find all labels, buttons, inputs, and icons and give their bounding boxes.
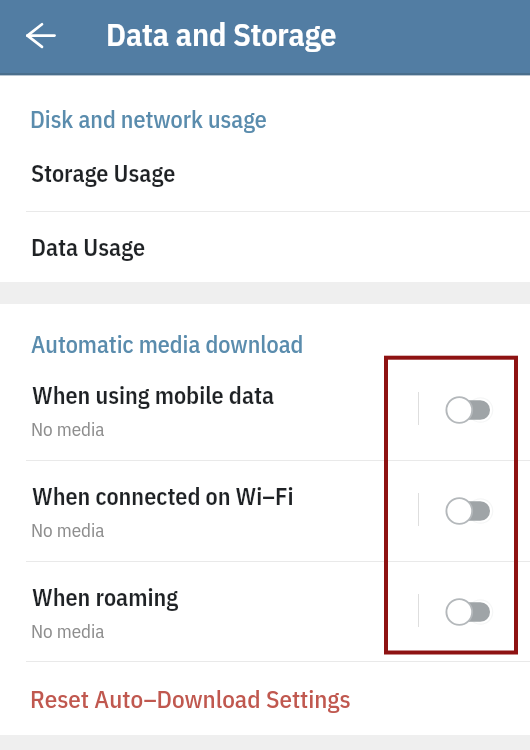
button[interactable] — [0, 212, 530, 281]
button[interactable] — [0, 140, 530, 210]
staticText: When roaming — [32, 581, 179, 612]
staticText: Data Usage — [31, 231, 146, 262]
button[interactable]: Toggle When connected on Wi–Fi — [440, 491, 502, 533]
staticText: No media — [31, 417, 105, 442]
staticText: Reset Auto–Download Settings — [30, 682, 351, 715]
staticText: No media — [31, 619, 105, 644]
button[interactable]: Toggle When using mobile data — [440, 390, 502, 432]
staticText: Storage Usage — [31, 157, 176, 188]
button[interactable]: Toggle When roaming — [440, 592, 502, 634]
staticText: When connected on Wi–Fi — [32, 480, 294, 511]
staticText: When using mobile data — [32, 379, 275, 410]
button[interactable] — [0, 562, 530, 662]
staticText: Disk and network usage — [30, 103, 267, 134]
staticText: No media — [31, 518, 105, 543]
button[interactable] — [0, 662, 530, 740]
staticText: Automatic media download — [31, 328, 304, 359]
button[interactable]: Back — [16, 11, 64, 59]
button[interactable] — [0, 360, 530, 460]
button[interactable] — [0, 461, 530, 561]
staticText: Data and Storage — [106, 13, 337, 55]
